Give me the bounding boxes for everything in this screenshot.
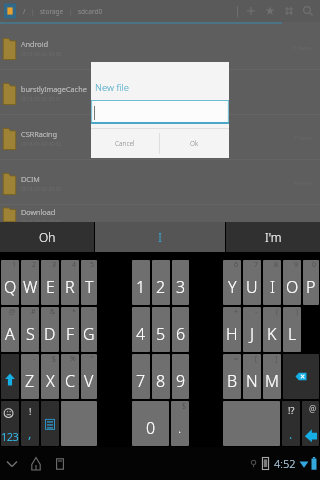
staticText: W — [23, 276, 38, 298]
button[interactable]: Enter — [302, 401, 319, 446]
staticText: ] — [275, 354, 278, 364]
button[interactable]: 4 — [132, 307, 150, 352]
button[interactable]: # — [21, 307, 39, 352]
button[interactable]: - — [243, 307, 261, 352]
button[interactable]: burstlyImageCache — [0, 70, 320, 114]
button[interactable]: Recent apps — [52, 456, 68, 472]
button[interactable]: 8 — [152, 354, 170, 399]
button[interactable]: Home — [28, 456, 44, 472]
button[interactable]: $ — [41, 354, 59, 399]
staticText: - — [33, 354, 36, 364]
button[interactable]: 1 — [1, 260, 19, 305]
button[interactable]: ] — [263, 354, 281, 399]
button[interactable]: 0 — [303, 260, 319, 305]
staticText: J — [250, 323, 255, 345]
staticText: Cancel — [115, 139, 135, 148]
staticText: 4 — [72, 260, 76, 270]
button[interactable]: 9 — [172, 354, 189, 399]
button[interactable]: CSRRacing — [0, 115, 320, 159]
button[interactable]: $ — [171, 401, 189, 446]
staticText: [ — [255, 354, 258, 364]
button[interactable]: - — [21, 354, 39, 399]
button[interactable]: ) — [283, 307, 301, 352]
staticText: 5 — [156, 323, 166, 345]
staticText: P — [306, 276, 316, 298]
button[interactable]: * — [61, 307, 79, 352]
button[interactable]: & — [41, 307, 59, 352]
staticText: O — [286, 276, 299, 298]
staticText: S — [26, 323, 35, 345]
staticText: 3 — [52, 260, 56, 270]
button[interactable]: Ok — [160, 129, 229, 158]
button[interactable]: 2 — [152, 260, 170, 305]
button[interactable]: + — [223, 307, 241, 352]
staticText: 8 — [274, 260, 278, 270]
staticText: Android — [21, 39, 48, 49]
button[interactable]: 7 — [132, 354, 150, 399]
staticText: " — [91, 354, 94, 364]
button[interactable]: New — [244, 4, 258, 18]
button[interactable]: ' — [81, 307, 97, 352]
button[interactable]: Symbols — [282, 401, 300, 446]
button[interactable]: 5 — [81, 260, 97, 305]
button[interactable]: DCIM — [0, 160, 320, 204]
button[interactable]: % — [61, 354, 79, 399]
staticText: H — [226, 323, 238, 345]
button[interactable]: Download — [0, 205, 320, 222]
button[interactable]: Oh — [0, 222, 94, 252]
button[interactable]: 2 — [21, 260, 39, 305]
button[interactable]: Favorites — [263, 4, 277, 18]
button[interactable]: 1 — [132, 260, 150, 305]
button[interactable]: Hide keyboard — [4, 456, 20, 472]
staticText: 9 — [294, 260, 298, 270]
button[interactable]: 9 — [283, 260, 301, 305]
staticText: 2 — [32, 260, 36, 270]
button[interactable]: 0 — [132, 401, 169, 446]
button[interactable]: Cancel — [91, 129, 159, 158]
button[interactable]: 6 — [223, 260, 241, 305]
button[interactable]: Numbers and symbols — [1, 401, 19, 446]
staticText: ( — [276, 307, 278, 317]
staticText: Y — [228, 276, 237, 298]
button[interactable]: Search — [301, 4, 315, 18]
staticText: V — [84, 370, 94, 392]
button[interactable]: Backspace — [283, 354, 319, 399]
button[interactable]: App icon — [4, 2, 16, 20]
button[interactable]: 7 — [243, 260, 261, 305]
staticText: . — [289, 426, 293, 442]
staticText: 7 — [254, 260, 258, 270]
button[interactable]: I'm — [226, 222, 320, 252]
button[interactable]: Android — [0, 25, 320, 69]
staticText: % — [70, 354, 76, 364]
staticText: T — [85, 276, 94, 298]
staticText: 2 — [156, 276, 166, 298]
staticText: # — [31, 307, 36, 317]
button[interactable]: @ — [1, 307, 19, 352]
button[interactable]: " — [81, 354, 97, 399]
button[interactable]: 8 — [263, 260, 281, 305]
button[interactable]: Shift — [1, 354, 19, 399]
button[interactable]: Keyboard settings — [41, 401, 59, 446]
staticText: 123 — [1, 429, 19, 444]
staticText: Ok — [190, 139, 199, 148]
button[interactable]: 5 — [152, 307, 170, 352]
button[interactable]: [ — [243, 354, 261, 399]
button[interactable]: 4 — [61, 260, 79, 305]
button[interactable]: 6 — [172, 307, 189, 352]
button[interactable]: 3 — [172, 260, 189, 305]
button[interactable]: 3 — [41, 260, 59, 305]
button[interactable]: ( — [263, 307, 281, 352]
button[interactable]: Comma — [21, 401, 39, 446]
staticText: = — [234, 354, 238, 364]
button[interactable]: Grid view — [282, 4, 296, 18]
staticText: R — [65, 276, 75, 298]
button[interactable]: I — [95, 222, 225, 252]
staticText: 0 — [146, 417, 156, 439]
button[interactable]: = — [223, 354, 241, 399]
staticText: E — [46, 276, 55, 298]
